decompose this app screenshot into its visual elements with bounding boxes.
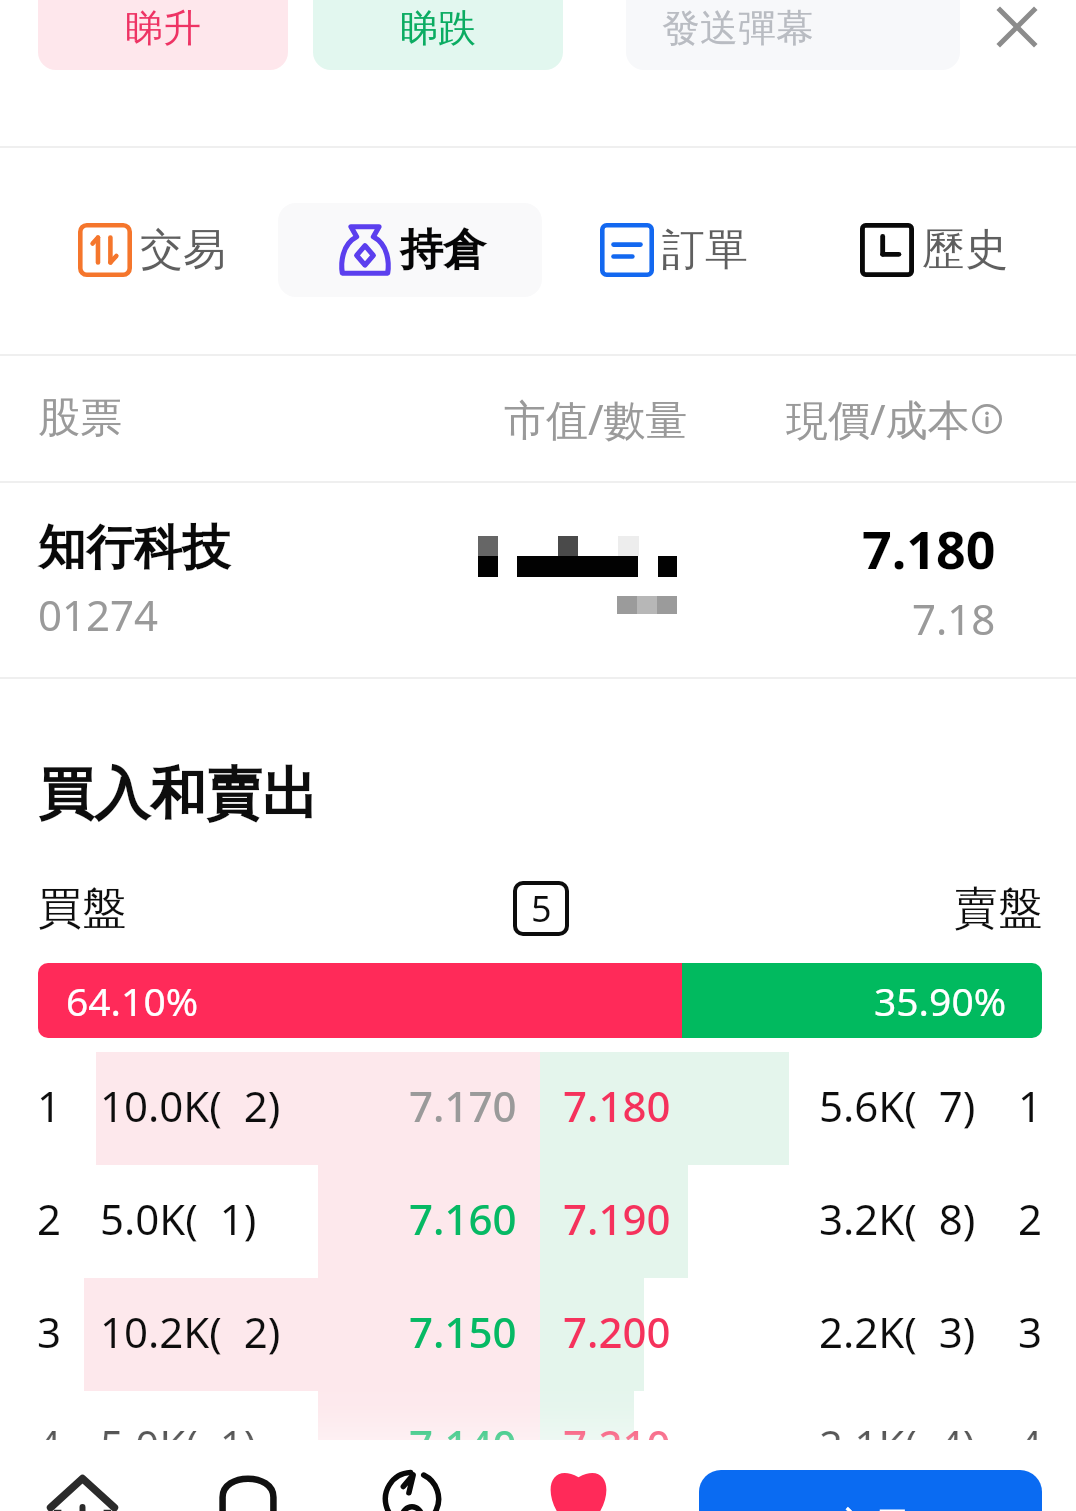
button[interactable]: 64.10% xyxy=(38,963,1042,1038)
staticText: 股票 xyxy=(38,392,122,445)
staticText: 現價/成本 xyxy=(786,390,970,447)
button[interactable]: Close xyxy=(977,0,1057,80)
button[interactable]: 知行科技 xyxy=(0,483,1076,677)
staticText: 買入和賣出 xyxy=(38,759,318,830)
staticText: 7.180 xyxy=(563,1077,671,1134)
staticText: 1 xyxy=(37,1077,62,1134)
staticText: 10.0K( 2) xyxy=(100,1077,281,1134)
staticText: 5 xyxy=(531,884,552,933)
staticText: 01274 xyxy=(38,586,159,643)
staticText: 35.90% xyxy=(874,974,1007,1027)
button[interactable]: 睇跌 xyxy=(313,0,563,70)
button[interactable]: 持倉 xyxy=(278,203,542,297)
button[interactable]: Favourite xyxy=(546,1463,611,1511)
staticText: 買盤 xyxy=(38,881,126,936)
button[interactable]: 3 xyxy=(0,1278,1076,1391)
staticText: 5.0K( 1) xyxy=(100,1416,257,1473)
button[interactable]: 睇升 xyxy=(38,0,288,70)
button[interactable]: 訂單 xyxy=(600,203,748,297)
staticText: 3.2K( 8) xyxy=(819,1190,976,1247)
staticText: 10.2K( 2) xyxy=(100,1303,281,1360)
staticText: 賣盤 xyxy=(954,881,1042,936)
staticText: 4 xyxy=(1018,1416,1043,1473)
staticText: 歷史 xyxy=(922,223,1008,277)
staticText: 7.140 xyxy=(409,1416,517,1473)
button[interactable]: 發送彈幕 xyxy=(626,0,960,70)
button[interactable]: 4 xyxy=(0,1391,1076,1504)
staticText: 4 xyxy=(37,1416,62,1473)
staticText: 2.1K( 4) xyxy=(819,1416,976,1473)
staticText: 睇升 xyxy=(125,4,201,52)
staticText: 3 xyxy=(1018,1303,1043,1360)
staticText: 7.190 xyxy=(563,1190,671,1247)
staticText: 7.160 xyxy=(409,1190,517,1247)
button[interactable]: 交易 xyxy=(78,203,226,297)
staticText: 持倉 xyxy=(400,223,486,277)
staticText: 1 xyxy=(1018,1077,1043,1134)
staticText: 7.170 xyxy=(409,1077,517,1134)
staticText: 交易 xyxy=(831,1502,911,1511)
staticText: 交易 xyxy=(140,223,226,277)
staticText: 睇跌 xyxy=(400,4,476,52)
staticText: 2.2K( 3) xyxy=(819,1303,976,1360)
staticText: 7.18 xyxy=(912,590,996,647)
staticText: 5.6K( 7) xyxy=(819,1077,976,1134)
staticText: 訂單 xyxy=(662,223,748,277)
staticText: 發送彈幕 xyxy=(662,4,814,52)
staticText: 2 xyxy=(37,1190,62,1247)
staticText: 7.150 xyxy=(409,1303,517,1360)
button[interactable]: Notifications xyxy=(217,1470,279,1511)
button[interactable]: 歷史 xyxy=(860,203,1008,297)
button[interactable]: 1 xyxy=(0,1052,1076,1165)
button[interactable]: 2 xyxy=(0,1165,1076,1278)
button[interactable]: Refresh xyxy=(381,1468,443,1511)
button[interactable]: 5 xyxy=(513,881,569,936)
staticText: 7.180 xyxy=(862,513,996,584)
button[interactable]: 交易 xyxy=(699,1470,1042,1511)
staticText: 市值/數量 xyxy=(504,390,688,447)
staticText: 7.210 xyxy=(563,1416,671,1473)
staticText: 64.10% xyxy=(66,974,199,1027)
button[interactable]: Home xyxy=(47,1470,118,1511)
staticText: 2 xyxy=(1018,1190,1043,1247)
staticText: 3 xyxy=(37,1303,62,1360)
staticText: 知行科技 xyxy=(38,518,230,578)
staticText: 5.0K( 1) xyxy=(100,1190,257,1247)
staticText: 7.200 xyxy=(563,1303,671,1360)
